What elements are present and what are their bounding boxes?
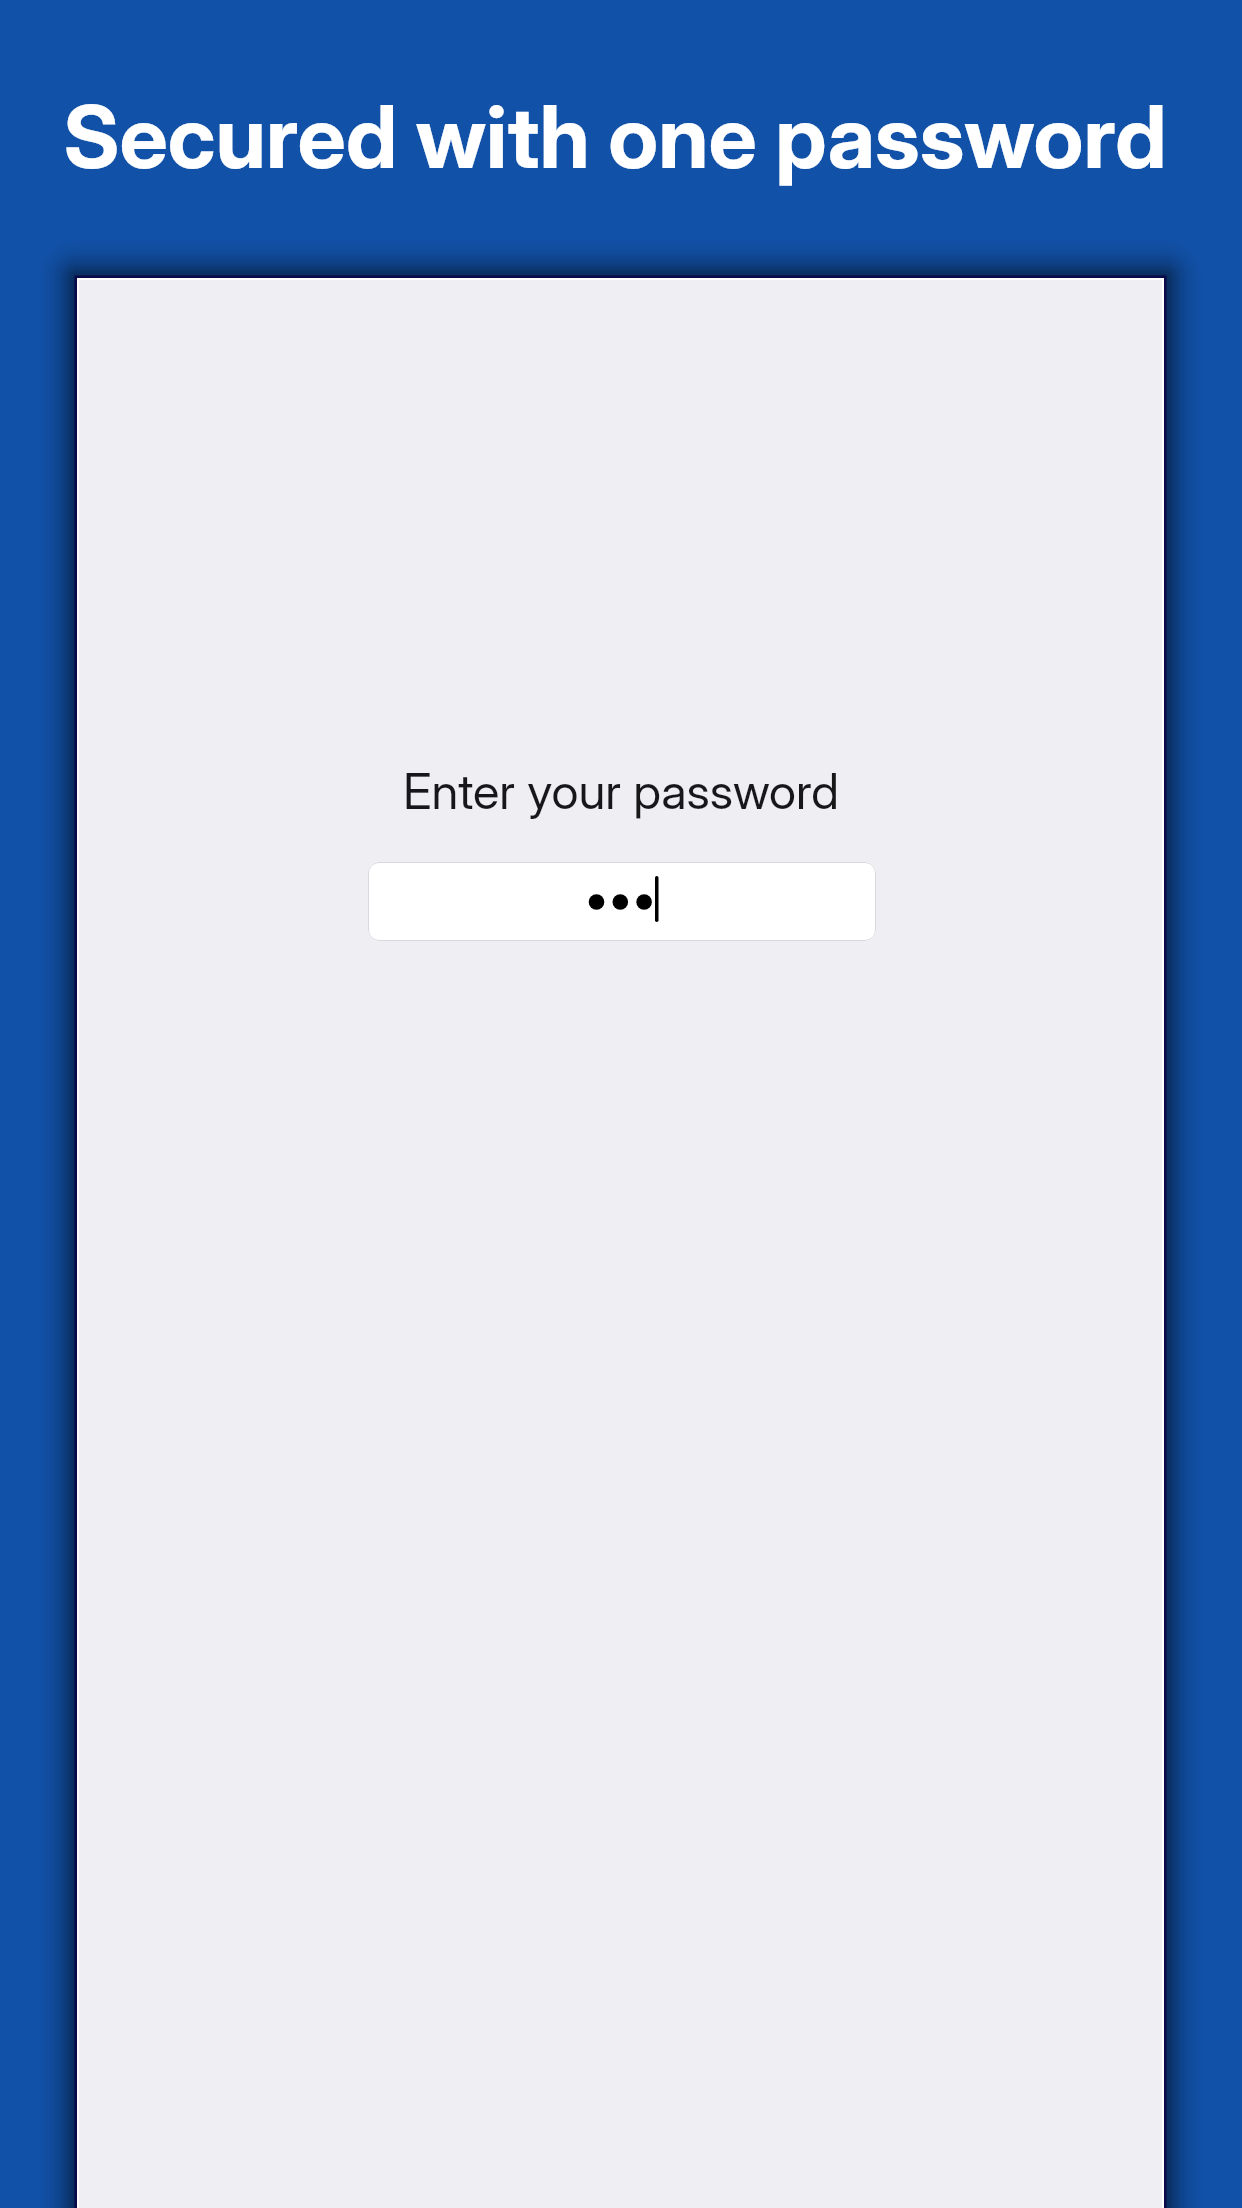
- staticText: Secured with one password: [63, 85, 1167, 189]
- button[interactable]: [368, 862, 876, 941]
- staticText: Enter your password: [403, 762, 839, 821]
